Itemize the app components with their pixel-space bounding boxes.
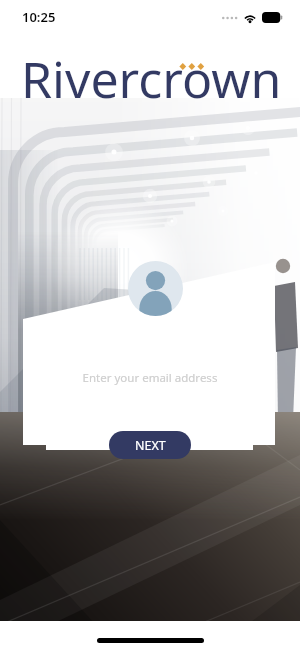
button[interactable]: NEXT bbox=[109, 431, 191, 459]
staticText: Enter your email address bbox=[0, 370, 300, 386]
staticText: NEXT bbox=[135, 437, 166, 454]
staticText: Rivercrown bbox=[21, 45, 282, 113]
staticText: 10:25 bbox=[22, 8, 56, 26]
